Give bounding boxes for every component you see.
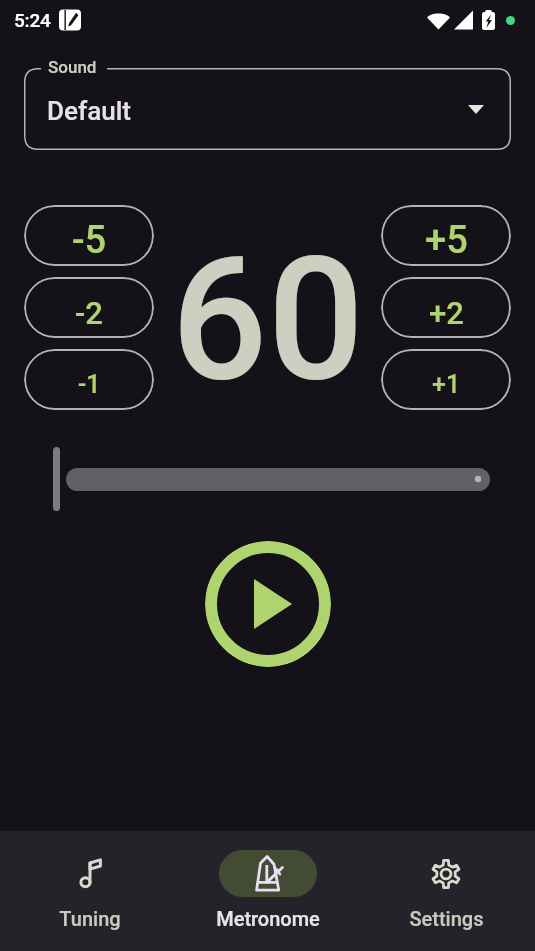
staticText: -2 <box>75 295 103 331</box>
staticText: Sound <box>48 57 97 77</box>
button[interactable]: -5 <box>24 205 154 266</box>
staticText: Tuning <box>59 907 121 930</box>
staticText: Metronome <box>216 907 320 930</box>
staticText: -1 <box>78 370 101 399</box>
button[interactable]: Sound <box>24 68 511 150</box>
staticText: Settings <box>409 907 484 930</box>
button[interactable]: -2 <box>24 277 154 338</box>
button[interactable]: +2 <box>381 277 511 338</box>
staticText: -5 <box>72 218 107 263</box>
button[interactable]: Play <box>205 541 331 667</box>
button[interactable]: Settings <box>357 831 535 951</box>
button[interactable]: +5 <box>381 205 511 266</box>
staticText: +5 <box>425 218 468 263</box>
button[interactable]: Tuning <box>0 831 179 951</box>
staticText: +1 <box>432 370 461 399</box>
staticText: Default <box>47 96 131 126</box>
staticText: 5:24 <box>14 9 51 31</box>
staticText: 60 <box>171 220 365 419</box>
staticText: +2 <box>429 295 464 331</box>
button[interactable]: -1 <box>24 349 154 410</box>
button[interactable]: Metronome <box>179 831 357 951</box>
button[interactable]: +1 <box>381 349 511 410</box>
